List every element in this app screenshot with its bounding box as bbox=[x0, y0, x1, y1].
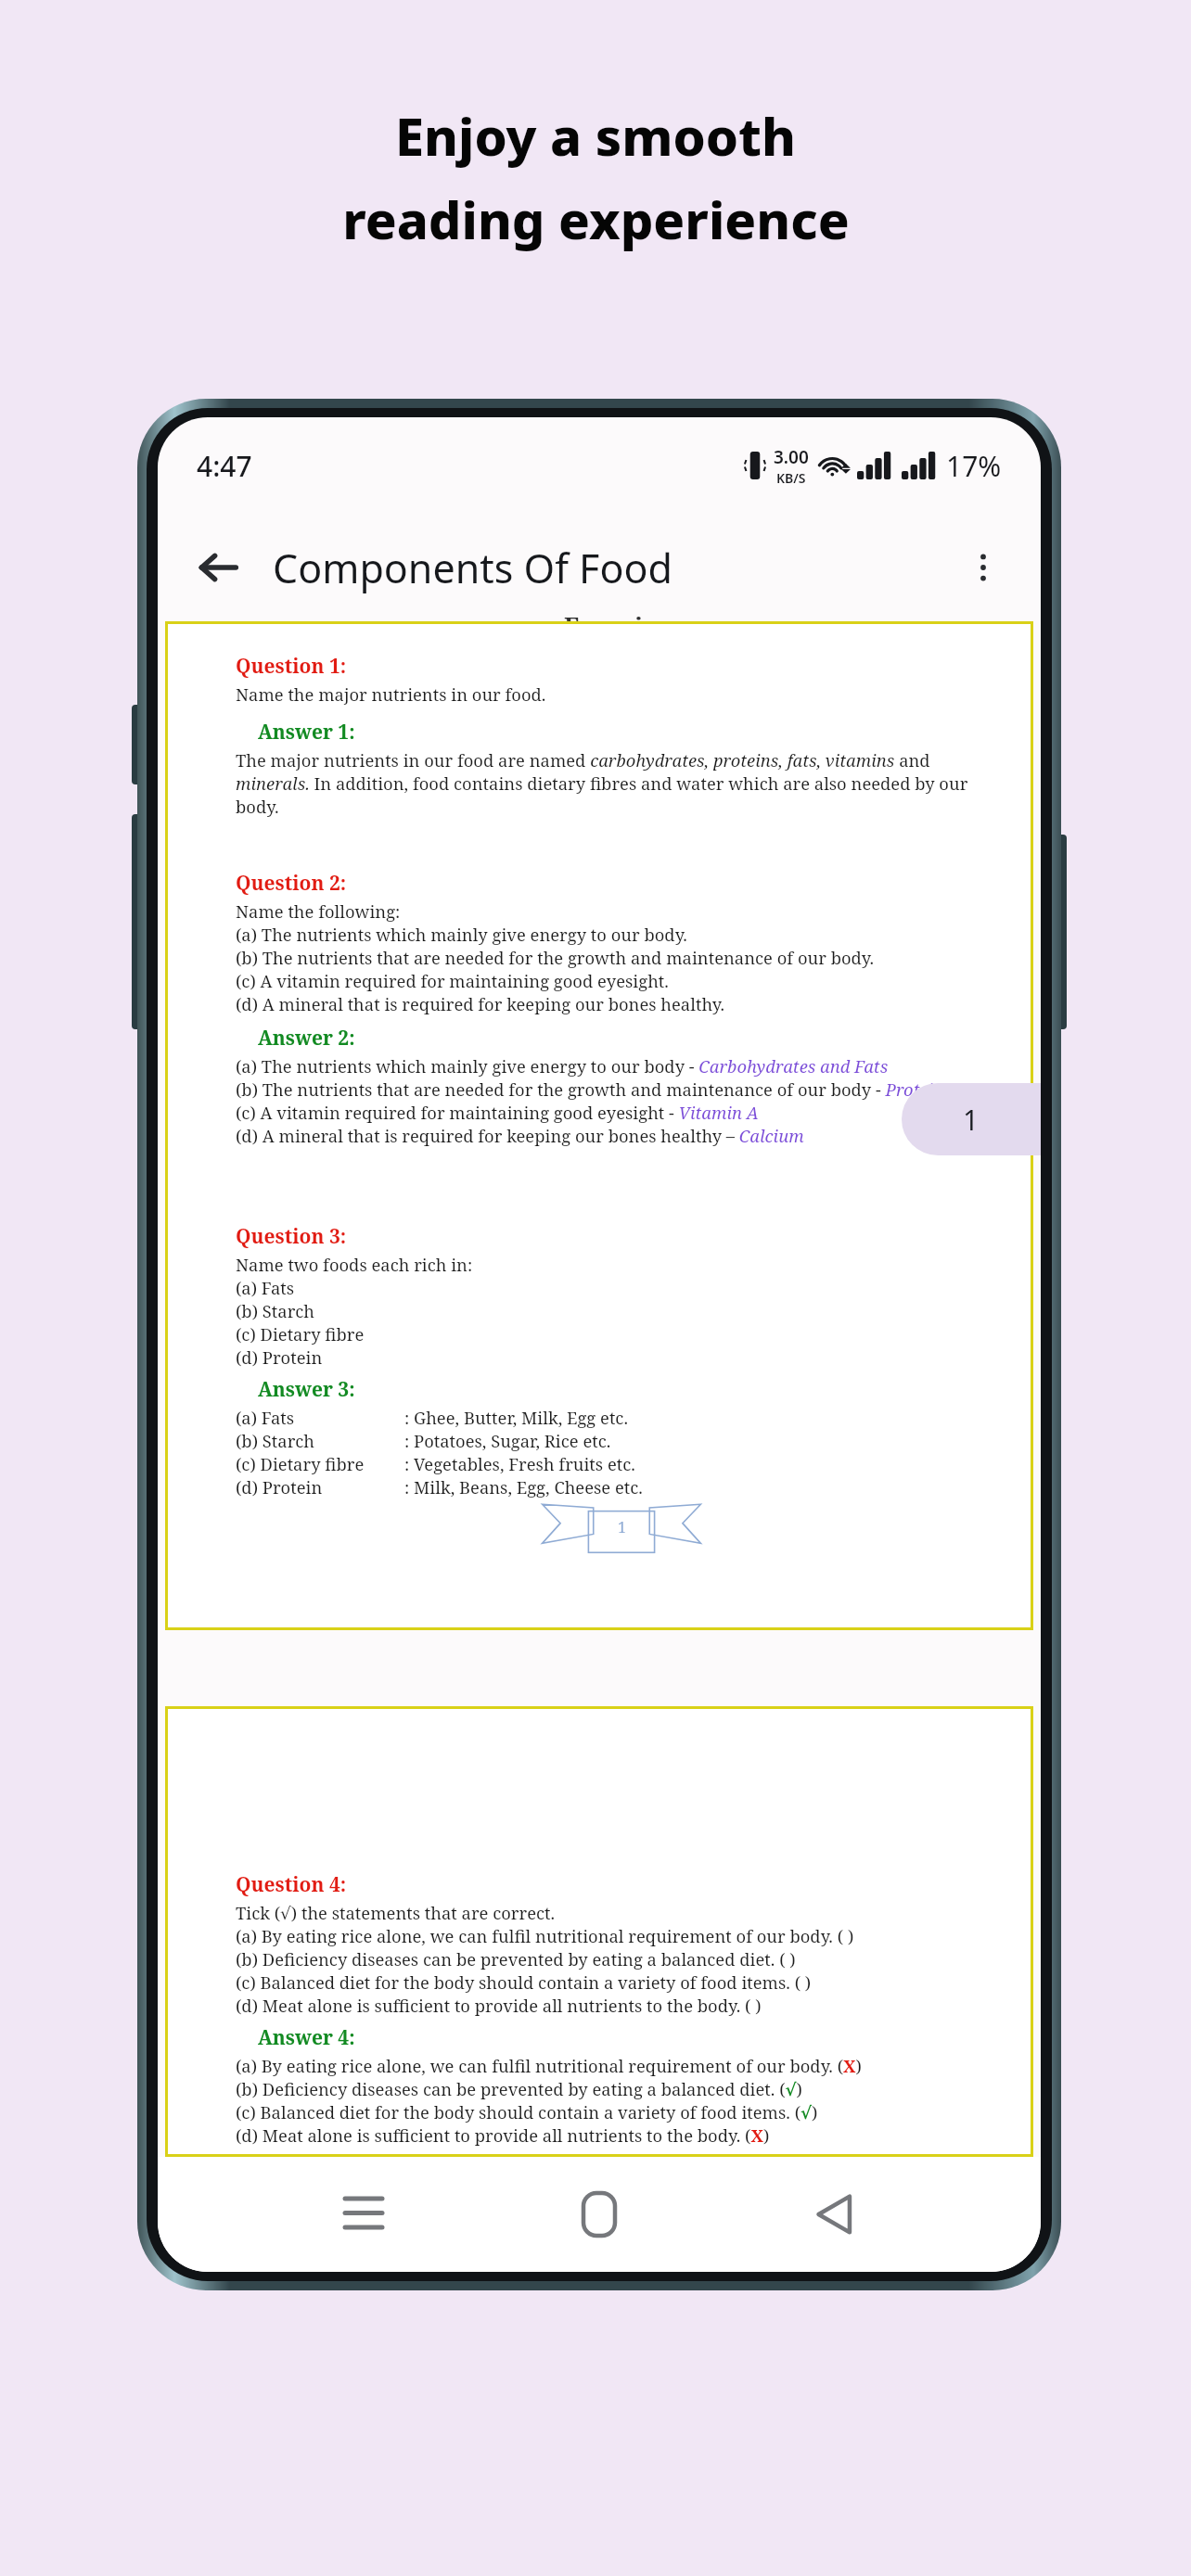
staticText: minerals. In addition, food contains die… bbox=[236, 772, 968, 795]
staticText: (d) A mineral that is required for keepi… bbox=[236, 1124, 804, 1147]
staticText: (a) The nutrients which mainly give ener… bbox=[236, 923, 687, 946]
staticText: Question 2: bbox=[236, 870, 347, 897]
staticText: (c) Balanced diet for the body should co… bbox=[236, 1970, 812, 1994]
staticText: : Vegetables, Fresh fruits etc. bbox=[404, 1452, 635, 1475]
staticText: 17% bbox=[946, 447, 1002, 485]
button[interactable]: More options bbox=[952, 536, 1015, 599]
staticText: 3.00 bbox=[774, 445, 809, 469]
staticText: Answer 3: bbox=[258, 1376, 355, 1403]
staticText: (b) The nutrients that are needed for th… bbox=[236, 1078, 952, 1101]
staticText: (c) Dietary fibre bbox=[236, 1322, 365, 1345]
staticText: (a) By eating rice alone, we can fulfil … bbox=[236, 2054, 862, 2077]
staticText: (b) Deficiency diseases can be prevented… bbox=[236, 2077, 802, 2100]
staticText: 4:47 bbox=[197, 447, 252, 485]
staticText: (b) The nutrients that are needed for th… bbox=[236, 946, 875, 969]
staticText: Name the following: bbox=[236, 899, 401, 923]
staticText: Exercises bbox=[564, 608, 680, 623]
staticText: Answer 4: bbox=[258, 2024, 355, 2051]
staticText: : Potatoes, Sugar, Rice etc. bbox=[404, 1429, 611, 1452]
staticText: (d) Protein bbox=[236, 1345, 323, 1369]
button[interactable]: Back bbox=[184, 533, 252, 602]
staticText: Answer 1: bbox=[258, 719, 355, 746]
button[interactable]: Recent apps bbox=[319, 2170, 408, 2259]
staticText: (d) Protein bbox=[236, 1475, 323, 1498]
staticText: (a) Fats bbox=[236, 1406, 295, 1429]
staticText: (c) Balanced diet for the body should co… bbox=[236, 2100, 818, 2123]
staticText: (b) Deficiency diseases can be prevented… bbox=[236, 1947, 796, 1970]
staticText: : Milk, Beans, Egg, Cheese etc. bbox=[404, 1475, 643, 1498]
staticText: Question 4: bbox=[236, 1871, 347, 1898]
staticText: : Ghee, Butter, Milk, Egg etc. bbox=[404, 1406, 629, 1429]
staticText: Enjoy a smooth bbox=[395, 100, 796, 171]
staticText: (d) Meat alone is sufficient to provide … bbox=[236, 1994, 762, 2017]
staticText: (d) A mineral that is required for keepi… bbox=[236, 992, 725, 1015]
staticText: (b) Starch bbox=[236, 1299, 315, 1322]
staticText: Question 1: bbox=[236, 653, 347, 680]
button[interactable]: Back bbox=[790, 2170, 879, 2259]
staticText: Answer 2: bbox=[258, 1025, 355, 1052]
staticText: Question 3: bbox=[236, 1223, 347, 1250]
staticText: (c) A vitamin required for maintaining g… bbox=[236, 969, 669, 992]
staticText: KB/S bbox=[776, 469, 806, 487]
staticText: body. bbox=[236, 795, 279, 818]
staticText: (a) By eating rice alone, we can fulfil … bbox=[236, 1924, 854, 1947]
staticText: 1 bbox=[618, 1517, 626, 1537]
staticText: The major nutrients in our food are name… bbox=[236, 748, 930, 772]
button[interactable]: 1 bbox=[902, 1083, 1041, 1155]
staticText: Tick (√) the statements that are correct… bbox=[236, 1901, 556, 1924]
staticText: Name two foods each rich in: bbox=[236, 1253, 473, 1276]
staticText: (a) Fats bbox=[236, 1276, 295, 1299]
staticText: (b) Starch bbox=[236, 1429, 315, 1452]
staticText: (d) Meat alone is sufficient to provide … bbox=[236, 2123, 770, 2147]
button[interactable]: Home bbox=[555, 2170, 644, 2259]
staticText: (a) The nutrients which mainly give ener… bbox=[236, 1054, 889, 1078]
staticText: (c) Dietary fibre bbox=[236, 1452, 365, 1475]
staticText: Name the major nutrients in our food. bbox=[236, 682, 546, 706]
staticText: (c) A vitamin required for maintaining g… bbox=[236, 1101, 759, 1124]
staticText: 1 bbox=[963, 1101, 980, 1139]
staticText: reading experience bbox=[342, 184, 850, 254]
staticText: Components Of Food bbox=[273, 541, 672, 595]
